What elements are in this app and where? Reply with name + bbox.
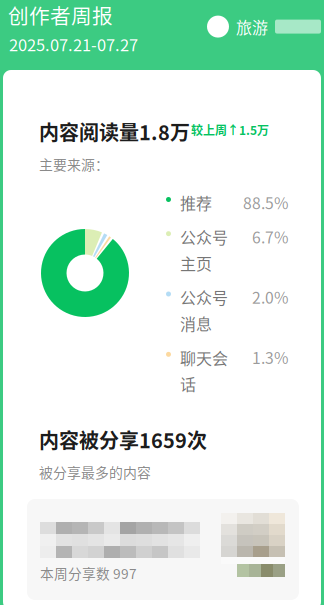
staticText: 主要来源： (39, 154, 109, 174)
staticText: 内容被分享1659次 (39, 425, 207, 454)
staticText: 聊天会 (180, 346, 228, 369)
button[interactable]: 旅游 (207, 15, 321, 38)
staticText: 话 (180, 372, 196, 395)
staticText: 88.5% (243, 191, 288, 214)
staticText: 公众号 (180, 225, 228, 248)
staticText: 创作者周报 (8, 0, 113, 30)
staticText: 主页 (180, 251, 212, 274)
staticText: 较上周↑1.5万 (191, 121, 269, 138)
staticText: 消息 (180, 312, 212, 335)
staticText: 1.3% (252, 346, 288, 369)
staticText: 推荐 (180, 191, 212, 214)
staticText: 本周分享数 997 (40, 563, 137, 583)
staticText: 6.7% (252, 225, 288, 248)
staticText: 2025.07.21-07.27 (9, 32, 138, 56)
staticText: 被分享最多的内容 (39, 462, 151, 482)
staticText: 旅游 (236, 15, 268, 38)
button[interactable]: 本周分享数 997 (27, 499, 299, 600)
staticText: 内容阅读量1.8万 (39, 117, 190, 146)
staticText: 公众号 (180, 285, 228, 309)
staticText: 2.0% (252, 285, 288, 308)
